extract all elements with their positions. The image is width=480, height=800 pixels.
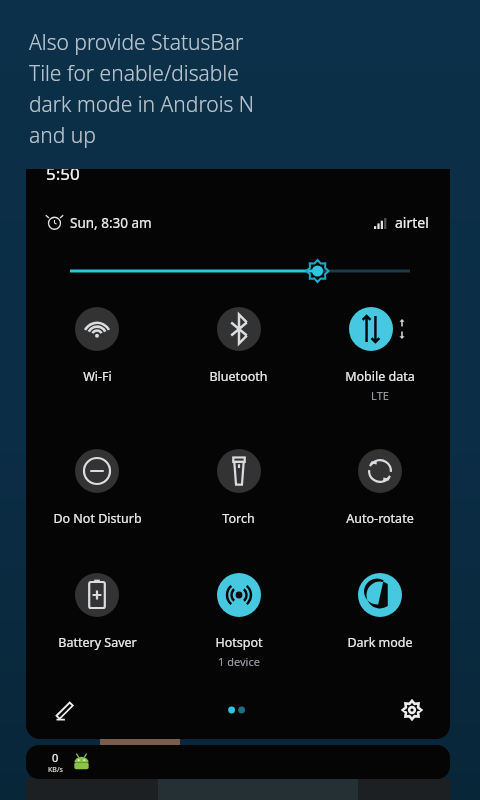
staticText: Dark mode bbox=[347, 634, 413, 651]
staticText: Auto-rotate bbox=[346, 510, 414, 527]
button[interactable]: Edit tiles bbox=[46, 692, 82, 728]
staticText: LTE bbox=[371, 388, 389, 403]
button[interactable]: Battery Saver bbox=[26, 573, 168, 651]
staticText: Do Not Disturb bbox=[53, 510, 142, 527]
button[interactable]: Mobile data bbox=[309, 307, 450, 403]
button[interactable]: Wi-Fi bbox=[26, 307, 168, 385]
staticText: Also provide StatusBar Tile for enable/d… bbox=[29, 28, 255, 149]
staticText: Wi-Fi bbox=[83, 368, 112, 385]
staticText: 5:50 bbox=[46, 169, 80, 185]
button[interactable]: Hotspot bbox=[168, 573, 309, 669]
staticText: 0 bbox=[52, 750, 59, 765]
button[interactable]: Dark mode bbox=[309, 573, 450, 651]
staticText: 1 device bbox=[218, 654, 260, 669]
button[interactable]: Brightness bbox=[26, 256, 450, 286]
staticText: Torch bbox=[222, 510, 255, 527]
button[interactable]: Auto-rotate bbox=[309, 449, 450, 527]
button[interactable]: Settings bbox=[394, 692, 430, 728]
button[interactable]: Bluetooth bbox=[168, 307, 309, 385]
staticText: Sun, 8:30 am bbox=[70, 214, 152, 232]
staticText: Bluetooth bbox=[209, 368, 268, 385]
staticText: Battery Saver bbox=[58, 634, 137, 651]
staticText: Mobile data bbox=[345, 368, 415, 385]
staticText: Hotspot bbox=[215, 634, 263, 651]
staticText: KB/s bbox=[48, 765, 63, 775]
button[interactable]: 0 bbox=[26, 745, 450, 779]
button[interactable]: Do Not Disturb bbox=[26, 449, 168, 527]
button[interactable]: Torch bbox=[168, 449, 309, 527]
staticText: airtel bbox=[395, 213, 429, 232]
